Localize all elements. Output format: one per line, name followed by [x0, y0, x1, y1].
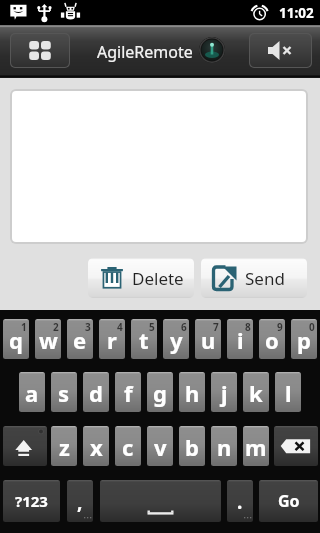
staticText: g [153, 378, 167, 408]
staticText: h [185, 378, 200, 408]
staticText: j [221, 378, 228, 408]
staticText: x [90, 432, 103, 462]
staticText: y [170, 325, 183, 355]
button[interactable]: l [275, 372, 301, 412]
button[interactable]: r [99, 319, 125, 359]
button[interactable]: d [83, 372, 109, 412]
staticText: AgileRemote [97, 41, 193, 63]
staticText: Send [245, 267, 285, 290]
button[interactable]: w [35, 319, 61, 359]
button[interactable]: s [51, 372, 77, 412]
button[interactable]: e [67, 319, 93, 359]
button[interactable]: q [3, 319, 29, 359]
button[interactable]: Comma [67, 480, 93, 522]
staticText: s [58, 378, 70, 408]
button[interactable]: Delete [88, 258, 194, 298]
button[interactable]: Apps [11, 34, 69, 67]
staticText: . [237, 489, 243, 515]
button[interactable]: o [259, 319, 285, 359]
staticText: t [139, 325, 149, 355]
staticText: f [124, 378, 133, 408]
staticText: u [201, 325, 216, 355]
button[interactable]: Backspace [274, 426, 318, 466]
button[interactable]: f [115, 372, 141, 412]
button[interactable]: y [163, 319, 189, 359]
staticText: 3 [85, 320, 91, 334]
staticText: q [9, 325, 23, 355]
button[interactable]: m [243, 426, 269, 466]
button[interactable]: Go [259, 480, 318, 522]
button[interactable]: Symbols [3, 480, 60, 522]
staticText: l [285, 378, 292, 408]
staticText: p [297, 325, 311, 355]
staticText: Delete [132, 267, 184, 290]
button[interactable]: x [83, 426, 109, 466]
staticText: 1 [21, 320, 27, 334]
button[interactable]: b [179, 426, 205, 466]
staticText: e [73, 325, 87, 355]
staticText: d [89, 378, 103, 408]
staticText: 6 [181, 320, 187, 334]
staticText: a [25, 378, 39, 408]
staticText: c [122, 432, 134, 462]
button[interactable]: Shift [3, 426, 47, 466]
staticText: m [245, 432, 267, 462]
staticText: k [249, 378, 263, 408]
button[interactable]: p [291, 319, 317, 359]
staticText: 7 [213, 320, 219, 334]
button[interactable]: z [51, 426, 77, 466]
staticText: r [107, 325, 117, 355]
staticText: b [185, 432, 199, 462]
staticText: w [39, 325, 58, 355]
button[interactable]: g [147, 372, 173, 412]
button[interactable]: Mute [250, 34, 311, 67]
button[interactable]: Voice status [199, 37, 225, 63]
button[interactable]: n [211, 426, 237, 466]
staticText: 11:02 [279, 4, 314, 22]
staticText: v [154, 432, 167, 462]
button[interactable]: c [115, 426, 141, 466]
staticText: 4 [117, 320, 123, 334]
staticText: 5 [149, 320, 155, 334]
staticText: z [59, 432, 70, 462]
button[interactable]: k [243, 372, 269, 412]
button[interactable]: Space [100, 480, 221, 522]
staticText: 9 [277, 320, 283, 334]
staticText: i [237, 325, 244, 355]
button[interactable]: j [211, 372, 237, 412]
button[interactable]: Send [201, 258, 307, 298]
staticText: o [265, 325, 279, 355]
button[interactable]: v [147, 426, 173, 466]
button[interactable]: t [131, 319, 157, 359]
staticText: 8 [245, 320, 251, 334]
button[interactable]: h [179, 372, 205, 412]
button[interactable]: i [227, 319, 253, 359]
button[interactable]: u [195, 319, 221, 359]
staticText: ?123 [15, 491, 48, 511]
button[interactable]: a [19, 372, 45, 412]
staticText: 2 [53, 320, 59, 334]
staticText: 0 [309, 320, 315, 334]
staticText: n [217, 432, 232, 462]
staticText: Go [278, 490, 300, 512]
staticText: , [77, 489, 83, 515]
button[interactable]: Period [227, 480, 253, 522]
